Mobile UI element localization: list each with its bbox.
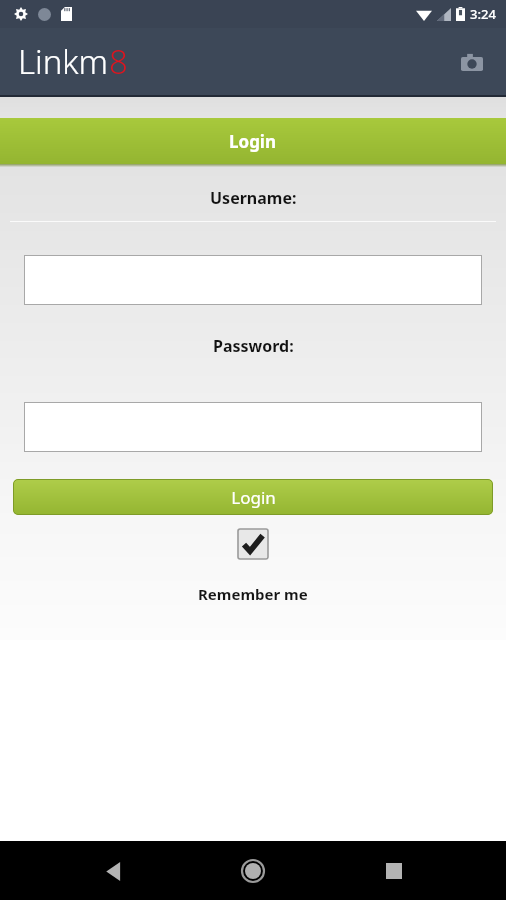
- button[interactable]: Remember me checkbox: [236, 527, 270, 561]
- button[interactable]: [24, 255, 482, 305]
- staticText: Remember me: [198, 584, 308, 604]
- staticText: 3:24: [470, 5, 496, 23]
- button[interactable]: Recent apps: [366, 843, 422, 899]
- button[interactable]: Back: [85, 843, 141, 899]
- staticText: Username:: [210, 187, 297, 209]
- staticText: 8: [109, 39, 128, 84]
- button[interactable]: Home: [225, 843, 281, 899]
- staticText: Password:: [213, 335, 294, 357]
- staticText: Login: [229, 130, 277, 153]
- staticText: Login: [231, 486, 276, 509]
- staticText: Linkm: [18, 39, 109, 84]
- button[interactable]: Camera: [452, 42, 492, 82]
- button[interactable]: [24, 402, 482, 452]
- button[interactable]: Login: [13, 479, 493, 515]
- button[interactable]: Login: [0, 118, 506, 164]
